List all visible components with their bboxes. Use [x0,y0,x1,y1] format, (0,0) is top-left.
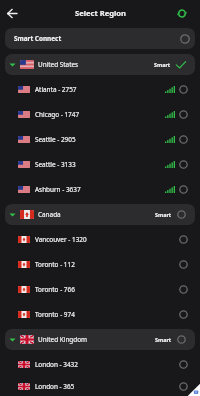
button[interactable]: London - 365 [0,377,200,396]
button[interactable]: Ashburn - 3637 [0,177,200,202]
button[interactable]: Toronto - 112 [0,252,200,277]
staticText: Toronto - 766 [35,285,75,294]
button[interactable]: Toronto - 766 [0,277,200,302]
button[interactable]: United Kingdom [5,329,195,350]
staticText: Canada [38,210,61,219]
button[interactable]: Refresh [175,6,189,20]
staticText: Atlanta - 2757 [35,85,77,94]
staticText: United States [38,60,79,69]
staticText: Smart [155,211,172,218]
staticText: Vancouver - 1320 [35,235,87,244]
staticText: Select Region [75,8,126,18]
staticText: Seattle - 2905 [35,135,76,144]
button[interactable]: Seattle - 2905 [0,127,200,152]
button[interactable]: United States [5,54,195,75]
staticText: Seattle - 3133 [35,160,76,169]
staticText: Toronto - 112 [35,260,75,269]
button[interactable]: Back [4,5,20,21]
button[interactable]: Smart Connect [5,28,195,49]
button[interactable]: Chicago - 1747 [0,102,200,127]
staticText: Ashburn - 3637 [35,185,81,194]
staticText: Chicago - 1747 [35,110,80,119]
staticText: Toronto - 974 [35,310,75,319]
staticText: London - 3432 [35,360,78,369]
button[interactable]: London - 3432 [0,352,200,377]
button[interactable]: Toronto - 974 [0,302,200,327]
staticText: Smart Connect [14,34,62,43]
staticText: Smart [155,336,172,343]
button[interactable]: Seattle - 3133 [0,152,200,177]
button[interactable]: Atlanta - 2757 [0,77,200,102]
staticText: London - 365 [35,382,75,391]
staticText: Smart [154,61,171,68]
button[interactable]: Vancouver - 1320 [0,227,200,252]
staticText: United Kingdom [38,335,88,344]
button[interactable]: Canada [5,204,195,225]
